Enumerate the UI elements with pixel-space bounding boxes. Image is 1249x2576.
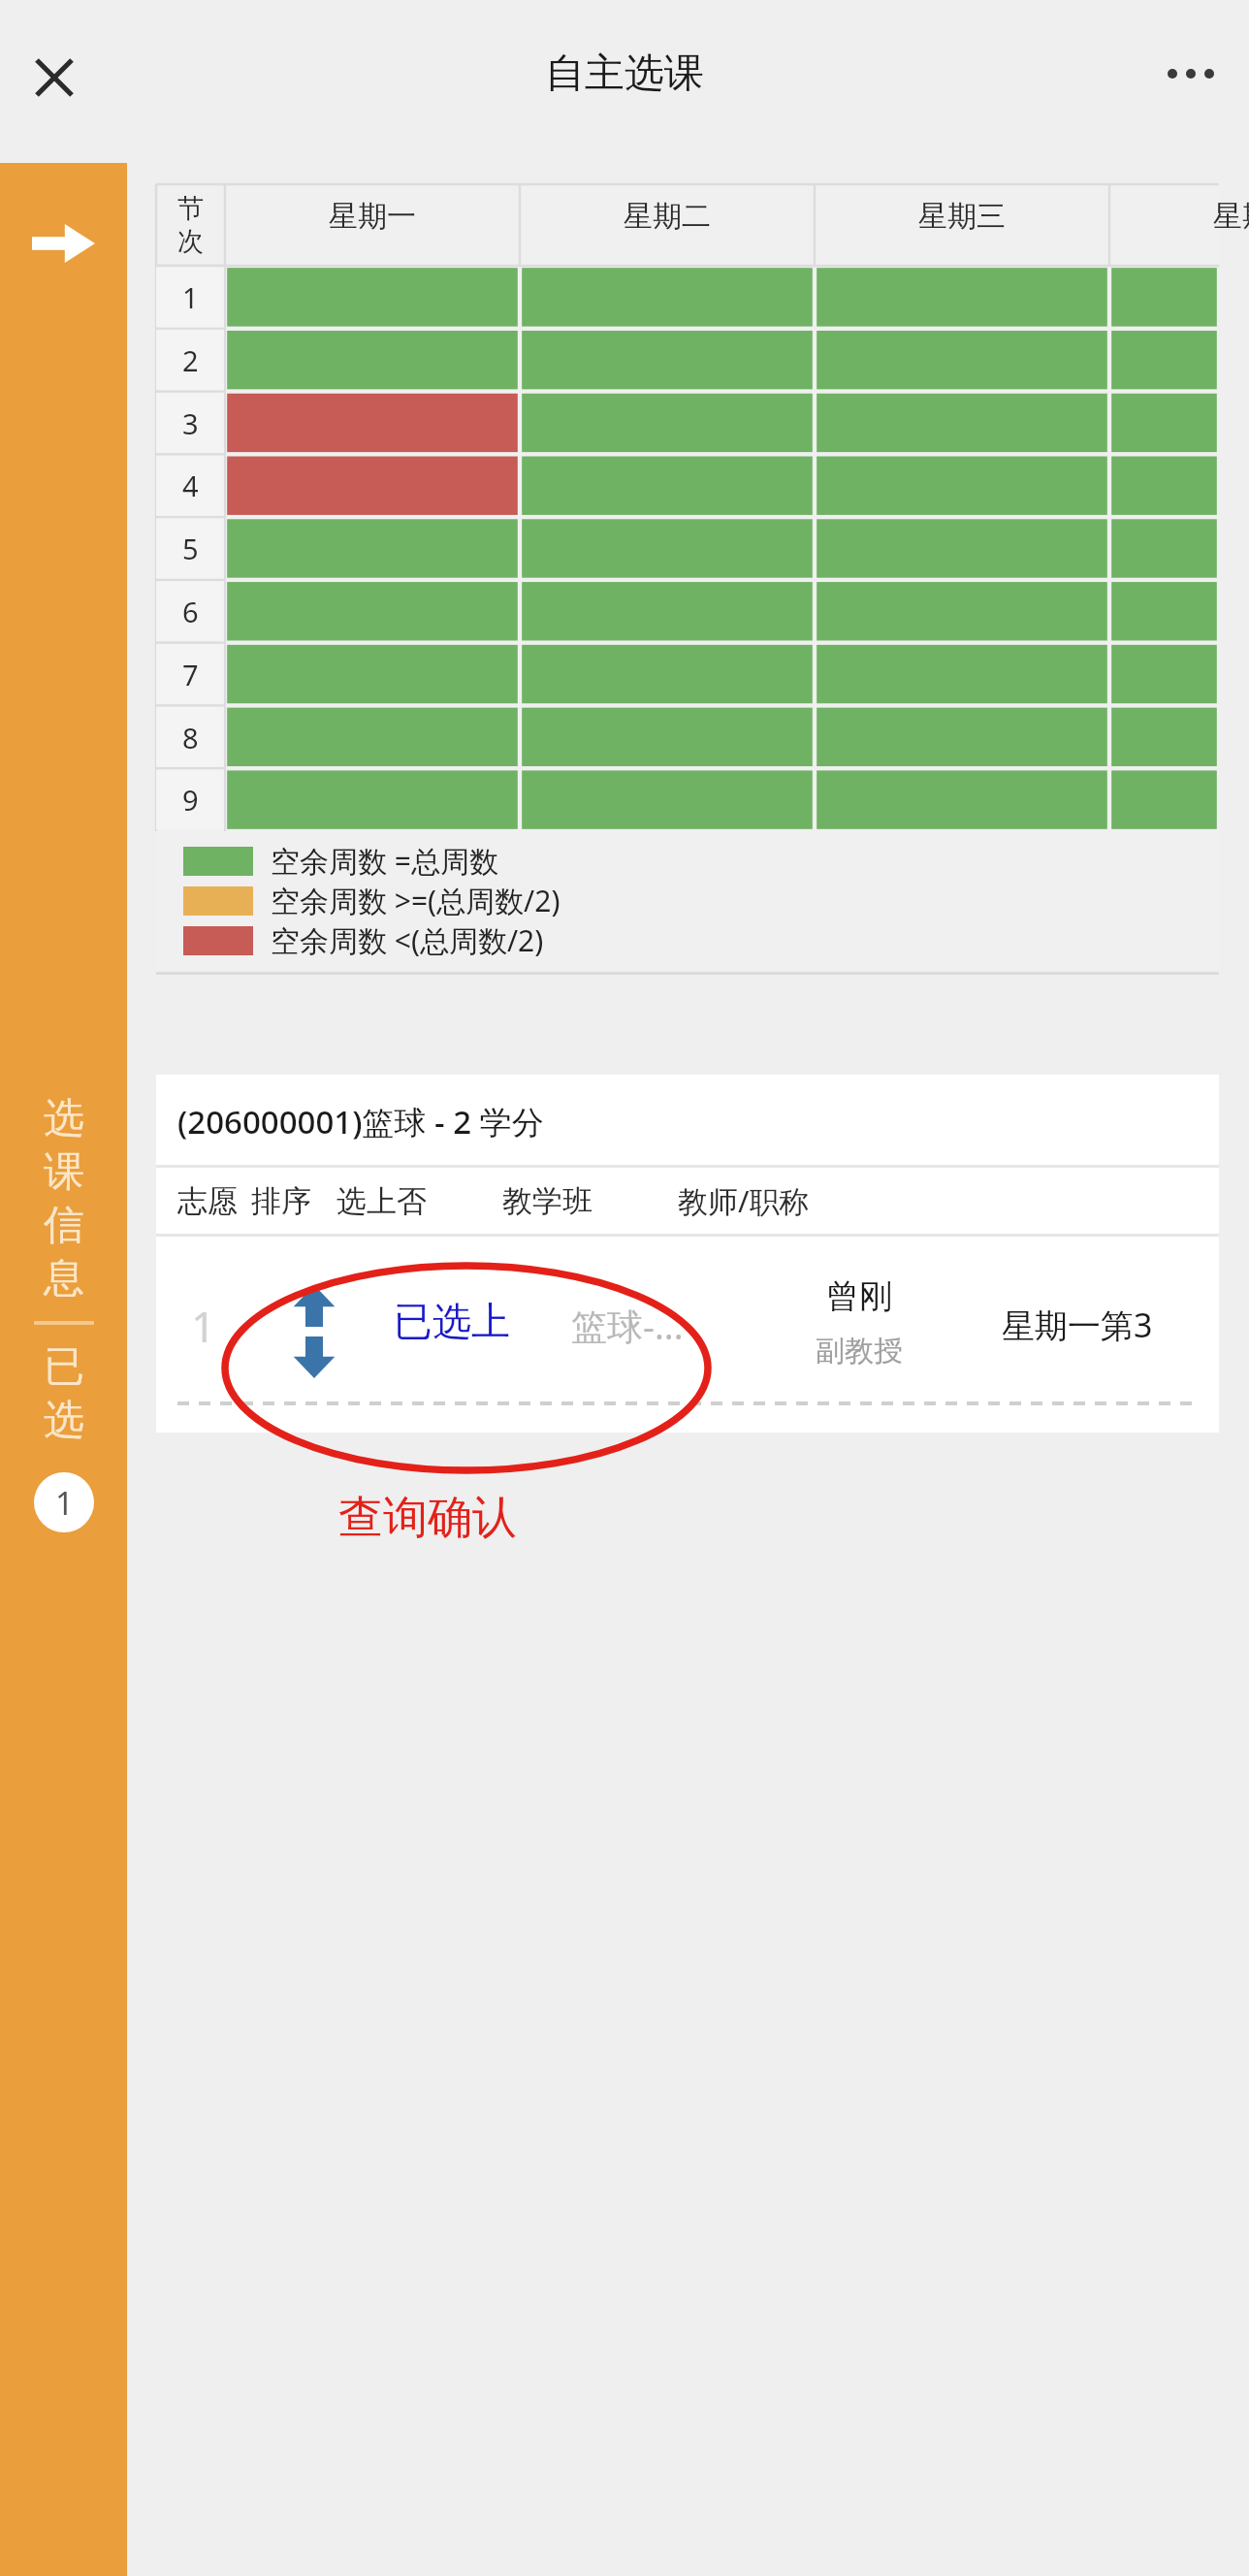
staticText: 选上否 (336, 1182, 427, 1220)
staticText: 8 (182, 719, 199, 757)
staticText: 次 (177, 225, 204, 258)
staticText: 星期二 (624, 198, 711, 235)
staticText: 课 (44, 1146, 84, 1198)
staticText: 1 (182, 278, 199, 316)
button[interactable]: 星期四 (1109, 184, 1249, 266)
staticText: 查询确认 (338, 1490, 517, 1546)
staticText: 志愿 (177, 1182, 238, 1220)
button[interactable]: 选 (0, 1067, 127, 2576)
staticText: 1 (55, 1481, 74, 1525)
staticText: 9 (182, 781, 199, 819)
staticText: 空余周数 >=(总周数/2) (271, 881, 560, 920)
staticText: 选 (44, 1093, 84, 1144)
staticText: 1 (191, 1297, 216, 1355)
staticText: 息 (44, 1253, 84, 1304)
staticText: 已选上 (394, 1297, 510, 1345)
staticText: 篮球-... (571, 1301, 684, 1350)
button[interactable]: More options (1146, 29, 1235, 118)
button[interactable]: 1 (156, 1237, 1219, 1427)
staticText: 排序 (251, 1182, 311, 1220)
staticText: 7 (182, 656, 199, 693)
button[interactable]: 星期三 (815, 184, 1109, 266)
staticText: 2 (182, 341, 199, 379)
button[interactable]: Reorder preference (274, 1283, 354, 1380)
staticText: 选 (44, 1395, 84, 1446)
staticText: 4 (182, 467, 199, 504)
staticText: 空余周数 =总周数 (271, 841, 498, 881)
staticText: 空余周数 <(总周数/2) (271, 920, 544, 960)
button[interactable]: Close (8, 31, 101, 124)
staticText: 6 (182, 593, 199, 630)
staticText: 信 (44, 1200, 84, 1251)
button[interactable]: 星期一 (225, 184, 520, 266)
staticText: 已 (44, 1341, 84, 1393)
staticText: 星期一第3 (1002, 1303, 1153, 1347)
staticText: 星期一 (329, 198, 416, 235)
button[interactable]: Expand panel (0, 163, 127, 1067)
staticText: 教师/职称 (678, 1180, 810, 1221)
staticText: 自主选课 (545, 48, 704, 99)
staticText: 3 (182, 404, 199, 442)
staticText: 副教授 (816, 1333, 903, 1369)
staticText: 教学班 (502, 1182, 592, 1220)
staticText: (206000001)篮球 - 2 学分 (177, 1100, 544, 1143)
staticText: 节 (177, 192, 204, 225)
staticText: 5 (182, 530, 199, 567)
staticText: 星期三 (918, 198, 1006, 235)
button[interactable]: 星期二 (520, 184, 815, 266)
staticText: 星期四 (1213, 198, 1249, 235)
staticText: 曾刚 (826, 1275, 892, 1317)
